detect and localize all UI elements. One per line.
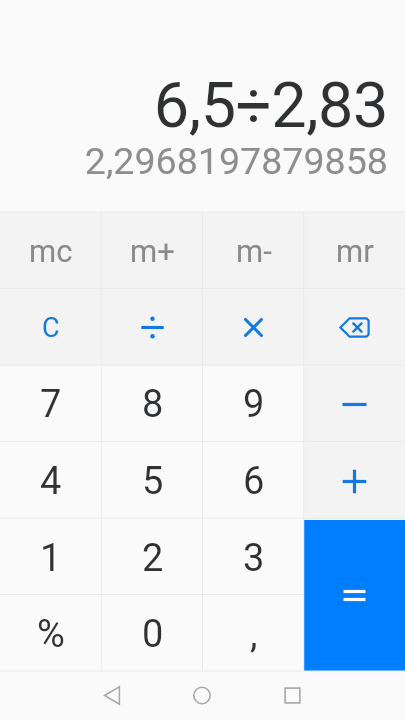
button[interactable]: 0 xyxy=(102,597,203,671)
button[interactable]: Multiply xyxy=(203,289,304,366)
button[interactable]: 4 xyxy=(0,443,102,520)
staticText: % xyxy=(37,612,65,657)
staticText: mr xyxy=(336,233,374,269)
button[interactable]: 5 xyxy=(102,443,203,520)
button[interactable]: 8 xyxy=(102,366,203,443)
staticText: 3 xyxy=(243,536,265,581)
button[interactable]: Divide xyxy=(102,289,203,366)
staticText: 1 xyxy=(40,536,62,581)
button[interactable]: 6 xyxy=(203,443,304,520)
button[interactable]: 9 xyxy=(203,366,304,443)
staticText: 9 xyxy=(243,382,265,427)
staticText: m+ xyxy=(130,233,175,269)
button[interactable]: Backspace xyxy=(304,289,405,366)
button[interactable]: m- xyxy=(203,212,304,289)
staticText: 0 xyxy=(142,612,164,657)
button[interactable]: m+ xyxy=(102,212,203,289)
staticText: C xyxy=(42,312,60,344)
button[interactable]: C xyxy=(0,289,102,366)
staticText: 2 xyxy=(142,536,164,581)
staticText: , xyxy=(250,612,258,657)
staticText: 2,2968197879858 xyxy=(0,139,388,183)
staticText: 5 xyxy=(142,459,164,504)
button[interactable]: Plus xyxy=(304,443,405,520)
button[interactable]: 7 xyxy=(0,366,102,443)
button[interactable]: Equals xyxy=(304,520,405,671)
button[interactable]: mc xyxy=(0,212,102,289)
button[interactable]: Recents xyxy=(247,671,405,720)
button[interactable]: , xyxy=(203,597,304,671)
button[interactable]: Back xyxy=(0,671,157,720)
staticText: 6 xyxy=(243,459,265,504)
button[interactable]: 1 xyxy=(0,520,102,597)
staticText: 7 xyxy=(40,382,62,427)
button[interactable]: % xyxy=(0,597,102,671)
staticText: 6,5÷2,83 xyxy=(0,69,388,143)
staticText: m- xyxy=(236,233,272,269)
button[interactable]: 2 xyxy=(102,520,203,597)
button[interactable]: Home xyxy=(157,671,247,720)
button[interactable]: Minus xyxy=(304,366,405,443)
button[interactable]: 3 xyxy=(203,520,304,597)
button[interactable]: mr xyxy=(304,212,405,289)
staticText: 4 xyxy=(40,459,62,504)
staticText: 8 xyxy=(142,382,164,427)
staticText: mc xyxy=(29,233,73,269)
